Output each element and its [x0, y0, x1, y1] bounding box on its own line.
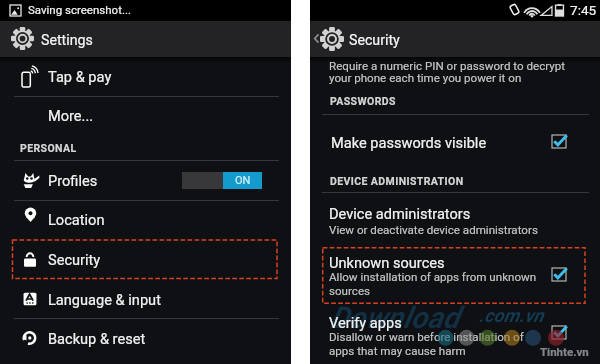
staticText: Settings: [41, 32, 93, 49]
staticText: Unknown sources: [329, 254, 445, 271]
button[interactable]: [310, 193, 600, 246]
staticText: View or deactivate device administrators: [329, 223, 538, 237]
staticText: Require a numeric PIN or password to dec…: [329, 59, 566, 85]
staticText: Profiles: [48, 172, 98, 189]
button[interactable]: [310, 21, 600, 57]
staticText: PERSONAL: [20, 142, 77, 154]
staticText: Location: [48, 211, 105, 228]
button[interactable]: [310, 246, 600, 307]
button[interactable]: [0, 278, 291, 317]
staticText: Make passwords visible: [331, 134, 487, 151]
staticText: Backup & reset: [48, 330, 146, 347]
staticText: DEVICE ADMINISTRATION: [330, 175, 464, 187]
staticText: Download: [330, 300, 460, 335]
staticText: Security: [349, 32, 400, 49]
staticText: Disallow or warn before installation of …: [329, 330, 524, 358]
staticText: PASSWORDS: [330, 95, 396, 107]
staticText: Tap & pay: [48, 68, 112, 85]
staticText: 7:45: [570, 2, 597, 18]
button[interactable]: [0, 57, 291, 96]
staticText: More...: [48, 107, 94, 124]
button[interactable]: [0, 200, 291, 239]
staticText: ON: [235, 174, 251, 187]
button[interactable]: [0, 96, 291, 135]
button[interactable]: [310, 307, 600, 364]
staticText: .com.vn: [479, 305, 544, 327]
staticText: Device administrators: [329, 205, 471, 222]
staticText: Allow installation of apps from unknown …: [329, 270, 537, 298]
button[interactable]: [310, 114, 600, 160]
staticText: Verify apps: [329, 314, 402, 331]
button[interactable]: [0, 161, 291, 200]
button[interactable]: [0, 317, 291, 356]
staticText: Language & input: [48, 291, 161, 308]
button[interactable]: ON: [182, 172, 262, 189]
button[interactable]: [0, 21, 291, 57]
staticText: Tinhte.vn: [540, 345, 589, 358]
button[interactable]: Back: [313, 33, 320, 44]
button[interactable]: [0, 239, 291, 278]
staticText: Saving screenshot...: [28, 3, 132, 16]
staticText: Security: [48, 251, 101, 268]
